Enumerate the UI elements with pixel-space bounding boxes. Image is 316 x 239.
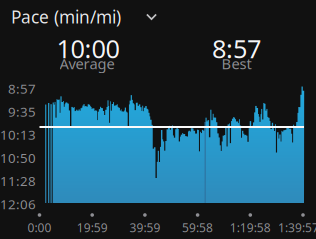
staticText: 10:50 [0, 149, 36, 167]
staticText: 12:06 [0, 195, 36, 213]
staticText: 1:39:57 [278, 219, 316, 235]
staticText: 10:00 [56, 32, 119, 65]
staticText: 11:28 [0, 172, 36, 190]
staticText: 8:57 [212, 32, 261, 65]
staticText: Average [59, 54, 114, 73]
staticText: Pace (min/mi) [11, 5, 121, 28]
staticText: 1:19:58 [230, 219, 271, 235]
staticText: 9:35 [8, 103, 36, 120]
staticText: 59:58 [182, 219, 213, 235]
staticText: 8:57 [8, 80, 36, 97]
staticText: 0:00 [27, 219, 51, 235]
staticText: Best [221, 54, 251, 73]
staticText: 39:59 [129, 219, 160, 235]
button[interactable]: Pace (min/mi) [11, 2, 171, 32]
staticText: 10:13 [0, 126, 36, 143]
staticText: 19:59 [77, 219, 108, 235]
